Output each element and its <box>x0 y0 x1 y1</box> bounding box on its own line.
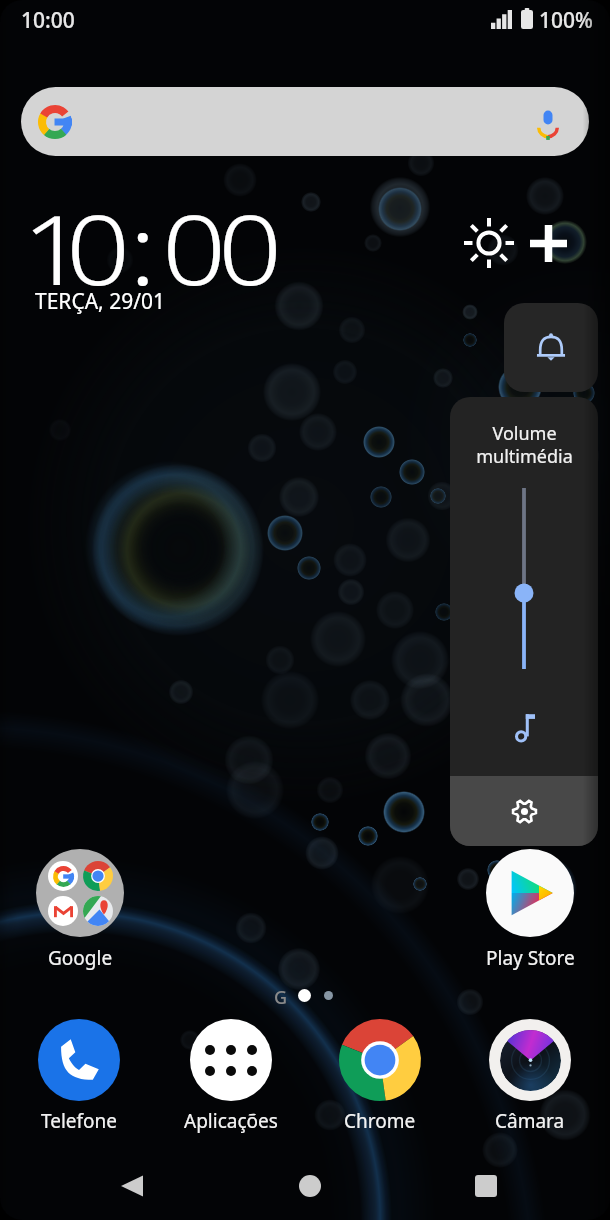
button[interactable]: Search <box>21 87 589 156</box>
staticText: Câmara <box>495 1108 565 1134</box>
staticText: 0 <box>162 182 226 313</box>
button[interactable]: Google <box>20 849 140 971</box>
button[interactable]: Chrome <box>320 1019 440 1134</box>
button[interactable]: Ring mode <box>504 303 598 392</box>
staticText: 1 <box>22 182 86 313</box>
staticText: Telefone <box>41 1108 118 1134</box>
button[interactable]: Page 2 <box>324 991 333 1000</box>
button[interactable]: Play Store <box>470 849 590 971</box>
staticText: Google <box>48 945 113 971</box>
button[interactable]: Aplicações <box>171 1019 291 1134</box>
button[interactable]: Recent apps <box>436 1152 536 1220</box>
button[interactable]: Câmara <box>470 1019 590 1134</box>
staticText: 100% <box>539 6 593 35</box>
button[interactable]: Telefone <box>19 1019 139 1134</box>
staticText: 10:00 <box>21 6 75 35</box>
button[interactable]: Page 1 <box>298 989 311 1002</box>
staticText: 0 <box>66 182 130 313</box>
button[interactable]: Sound settings <box>450 776 598 846</box>
staticText: : <box>129 182 157 313</box>
staticText: G <box>274 985 288 1010</box>
staticText: Aplicações <box>184 1108 278 1134</box>
button[interactable]: Back <box>82 1152 182 1220</box>
button[interactable]: Brightness <box>464 218 514 268</box>
staticText: Chrome <box>344 1108 416 1134</box>
staticText: 0 <box>218 182 282 313</box>
button[interactable]: Add widget <box>526 221 571 266</box>
staticText: Volume multimédia <box>476 421 573 468</box>
staticText: TERÇA, 29/01 <box>35 287 166 316</box>
button[interactable]: Home <box>260 1152 360 1220</box>
staticText: Play Store <box>486 945 575 971</box>
